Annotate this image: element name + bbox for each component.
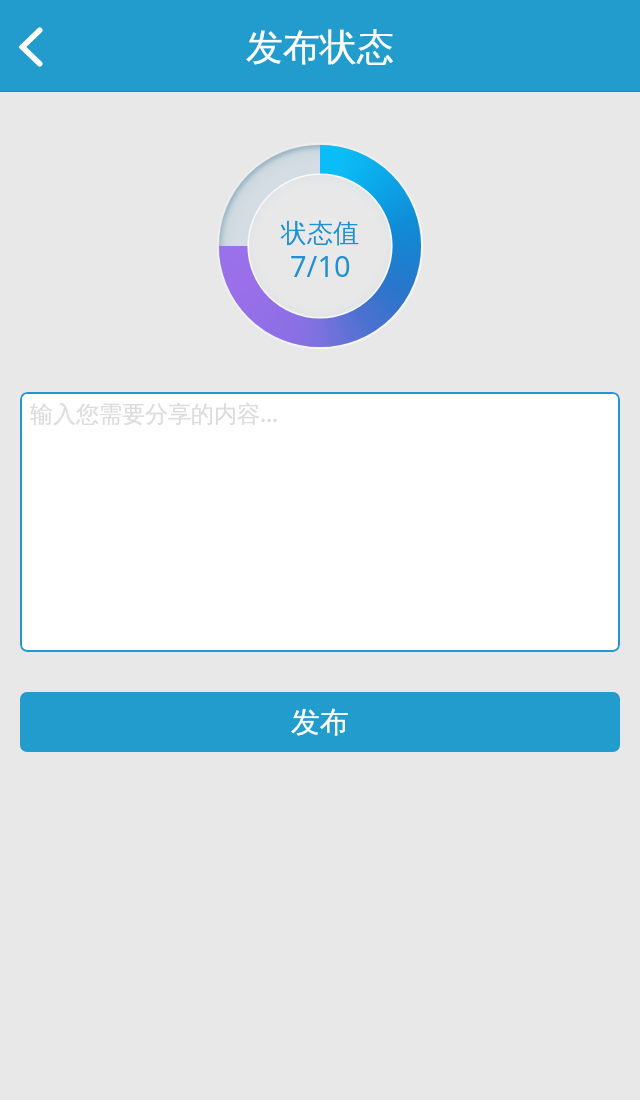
staticText: 发布状态 — [246, 24, 394, 71]
staticText: 输入您需要分享的内容… — [30, 397, 279, 428]
staticText: 状态值 — [281, 217, 359, 250]
button[interactable]: 发布 — [20, 692, 620, 752]
button[interactable]: 输入您需要分享的内容… — [20, 392, 620, 652]
staticText: 发布 — [291, 704, 349, 741]
staticText: 7/10 — [290, 246, 351, 285]
button[interactable]: Back — [0, 0, 62, 92]
